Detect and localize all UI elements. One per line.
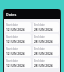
staticText: Dates <box>6 12 17 17</box>
button[interactable]: End date <box>33 58 59 68</box>
staticText: End date <box>34 59 45 63</box>
button[interactable]: Start date <box>5 34 31 44</box>
button[interactable]: Start date <box>5 46 31 56</box>
staticText: Start date <box>6 47 18 51</box>
staticText: Start date <box>6 59 18 63</box>
staticText: End date <box>34 35 45 39</box>
staticText: 12 JUN 2024 <box>6 64 25 67</box>
button[interactable]: End date <box>33 46 59 56</box>
staticText: Start date <box>6 23 18 27</box>
staticText: Start date <box>6 35 18 39</box>
staticText: 12 JUN 2024 <box>6 40 25 43</box>
button[interactable]: Start date <box>5 58 31 68</box>
staticText: 28 JUN 2024 <box>34 40 53 43</box>
staticText: 28 JUN 2024 <box>34 52 53 55</box>
staticText: End date <box>34 23 45 27</box>
button[interactable]: End date <box>33 34 59 44</box>
button[interactable]: End date <box>33 22 59 32</box>
button[interactable]: Start date <box>5 22 31 32</box>
staticText: 28 JUN 2024 <box>34 64 53 67</box>
staticText: 12 JUN 2024 <box>6 28 25 31</box>
staticText: 12 JUN 2024 <box>6 52 25 55</box>
staticText: 28 JUN 2024 <box>34 28 53 31</box>
staticText: End date <box>34 47 45 51</box>
